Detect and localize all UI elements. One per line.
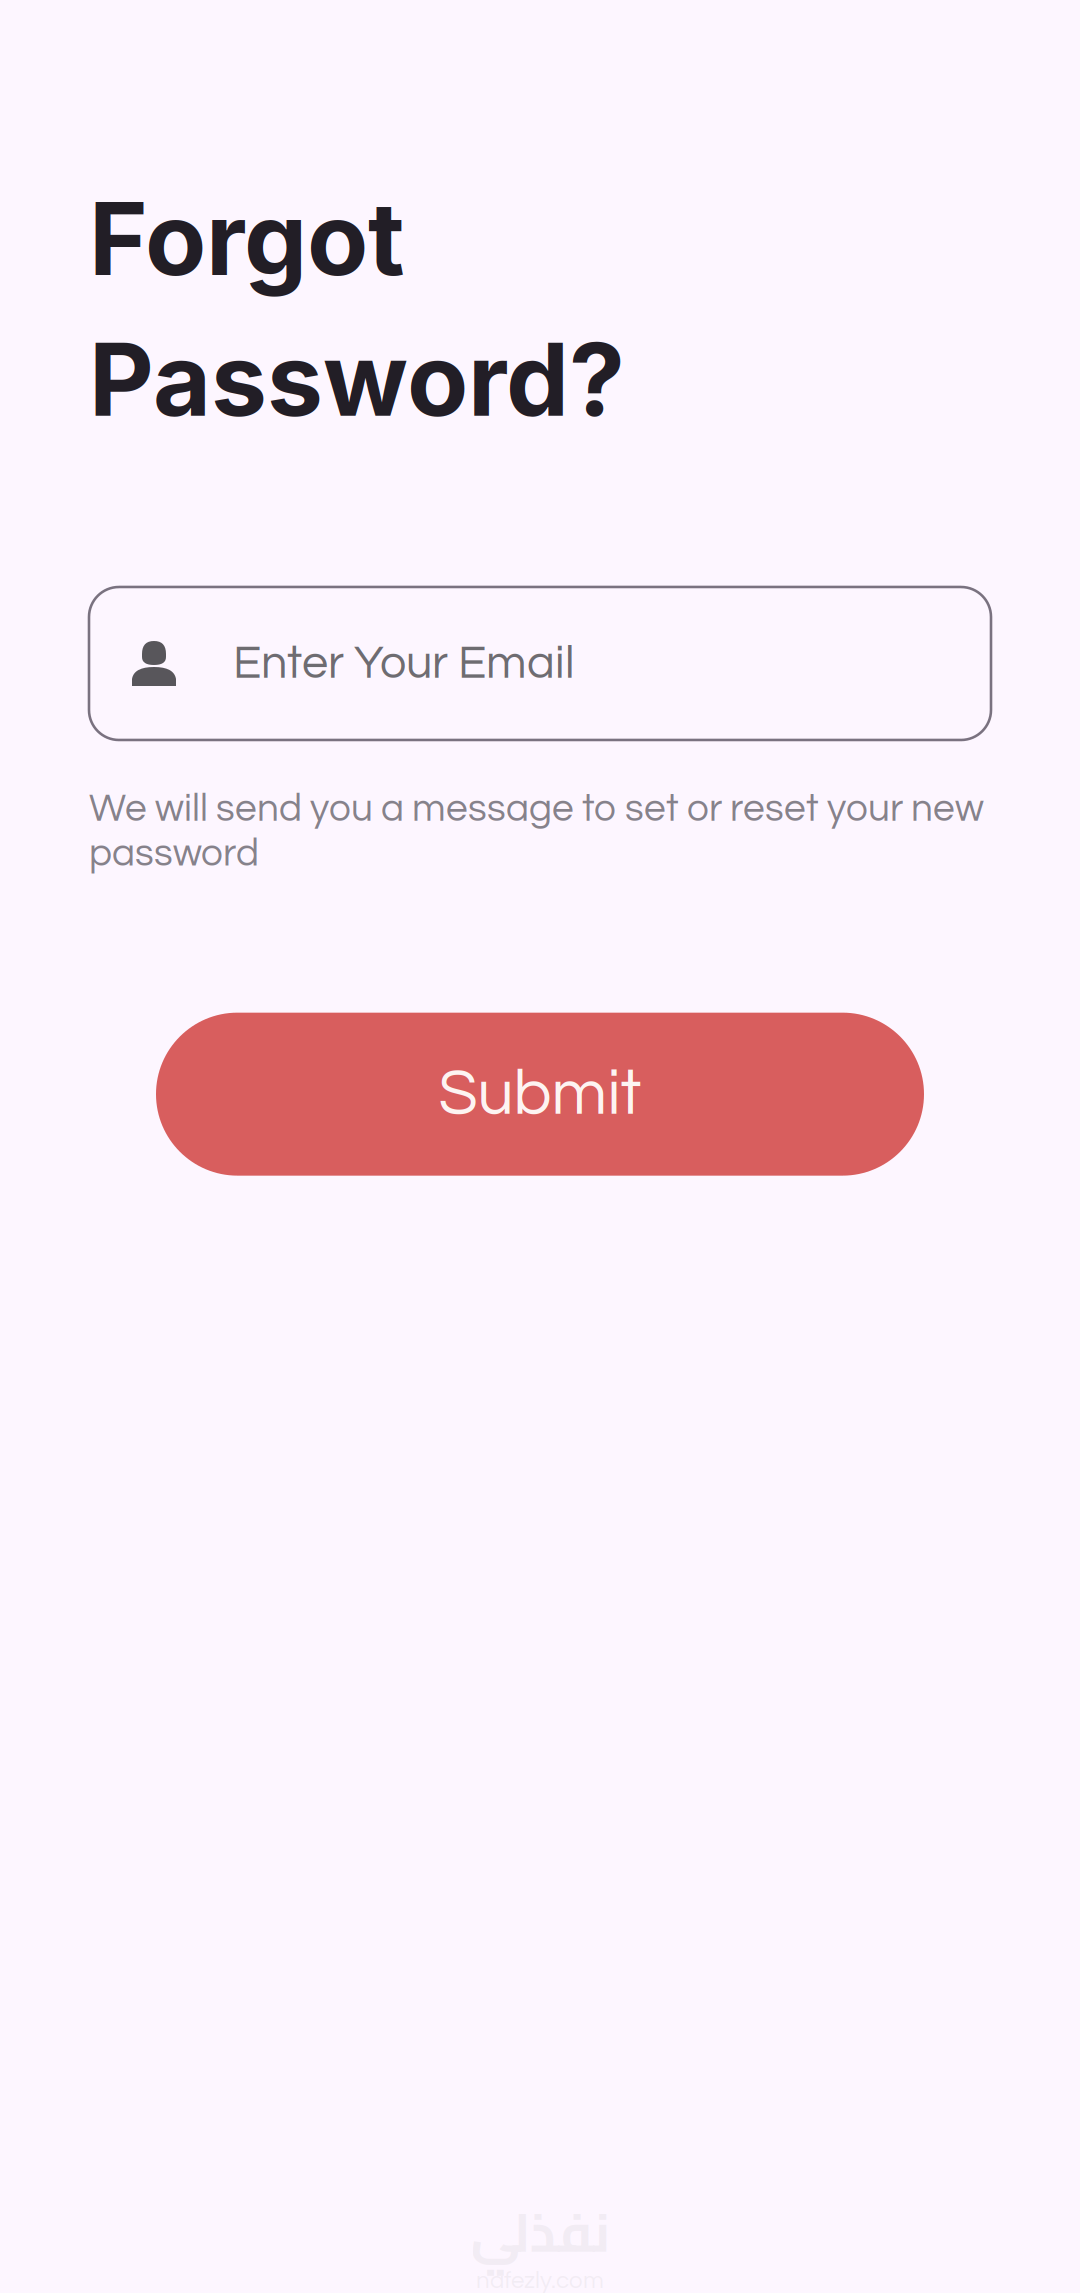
staticText: We will send you a message to set or res…: [89, 789, 984, 874]
staticText: نفذلي: [470, 2182, 610, 2282]
staticText: Password?: [89, 319, 625, 440]
staticText: Submit: [438, 1061, 641, 1127]
staticText: nafezly.com: [476, 2268, 604, 2293]
staticText: Forgot: [89, 178, 405, 299]
staticText: Enter Your Email: [233, 639, 575, 688]
button[interactable]: Enter Your Email: [89, 587, 991, 740]
button[interactable]: Submit: [156, 1013, 924, 1176]
